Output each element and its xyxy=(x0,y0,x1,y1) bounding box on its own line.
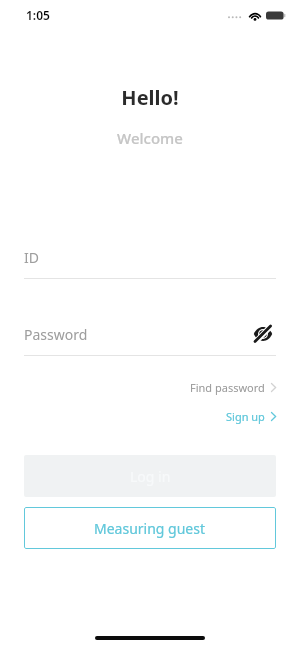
staticText: Welcome xyxy=(0,128,300,148)
staticText: Password xyxy=(24,325,88,344)
button[interactable]: Measuring guest xyxy=(24,507,276,549)
button[interactable]: Show password xyxy=(250,321,276,347)
staticText: 1:05 xyxy=(26,7,50,23)
staticText: ID xyxy=(24,248,39,267)
button[interactable]: ID xyxy=(24,242,276,279)
staticText: Find password xyxy=(190,380,265,395)
staticText: Sign up xyxy=(226,409,265,424)
button[interactable]: Sign up xyxy=(226,407,276,426)
staticText: Hello! xyxy=(0,84,300,111)
button[interactable]: Find password xyxy=(190,378,276,397)
button[interactable]: Password xyxy=(24,325,250,344)
staticText: Measuring guest xyxy=(94,519,206,538)
